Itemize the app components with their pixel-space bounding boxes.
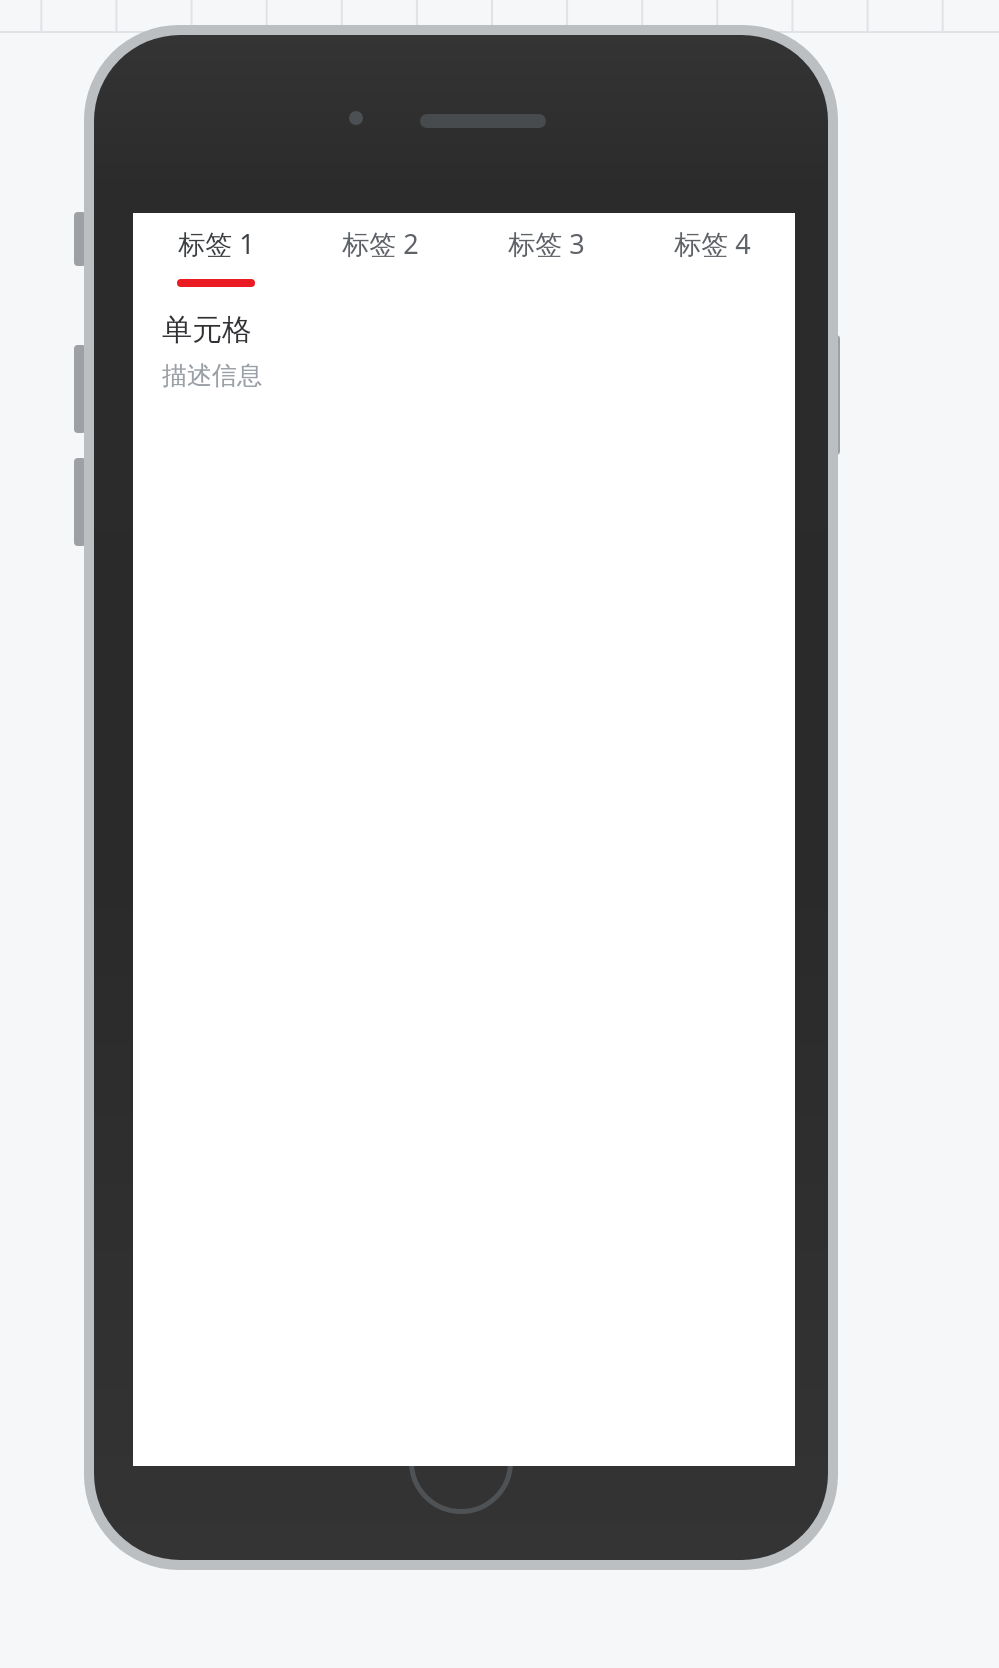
staticText: 标签 1 [178,225,255,262]
staticText: 标签 4 [674,225,751,262]
button[interactable]: 标签 1 [133,213,298,303]
button[interactable]: 标签 3 [463,213,629,303]
staticText: 单元格 [162,311,252,349]
button[interactable]: 标签 4 [629,213,795,303]
button[interactable]: 标签 2 [298,213,463,303]
button[interactable]: 单元格 [133,303,795,407]
staticText: 标签 3 [508,225,585,262]
staticText: 描述信息 [162,360,262,391]
staticText: 标签 2 [342,225,419,262]
